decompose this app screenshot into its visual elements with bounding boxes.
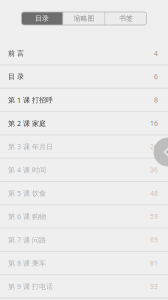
staticText: 前 言	[8, 49, 24, 58]
staticText: 目 录	[8, 72, 24, 81]
staticText: 4	[154, 49, 158, 58]
staticText: 第 4 课 时间	[8, 165, 46, 175]
staticText: 26	[150, 142, 158, 151]
staticText: 第 5 课 饮食	[8, 188, 46, 198]
staticText: 缩略图	[73, 14, 94, 23]
staticText: 8	[154, 95, 158, 104]
staticText: 59	[150, 212, 158, 221]
staticText: 第 7 课 问路	[8, 235, 46, 244]
staticText: 第 8 课 乘车	[8, 258, 46, 268]
staticText: 目录	[35, 14, 49, 23]
button[interactable]: 第 1 课 打招呼	[0, 89, 168, 112]
staticText: 第 2 课 家庭	[8, 118, 46, 128]
staticText: 第 1 课 打招呼	[8, 95, 53, 105]
staticText: 第 9 课 打电话	[8, 281, 53, 291]
staticText: 36	[150, 165, 158, 174]
staticText: 93	[150, 282, 158, 291]
button[interactable]: 第 3 课 年月日	[0, 135, 168, 159]
button[interactable]: Close contents	[153, 137, 168, 166]
staticText: 书签	[119, 14, 133, 23]
staticText: 6	[154, 72, 158, 81]
button[interactable]: 第 7 课 问路	[0, 229, 168, 252]
button[interactable]: 前 言	[0, 42, 168, 65]
staticText: 第 6 课 购物	[8, 212, 46, 221]
button[interactable]: 缩略图	[63, 12, 104, 25]
staticText: 第 3 课 年月日	[8, 142, 53, 151]
button[interactable]: 书签	[105, 12, 146, 25]
staticText: 16	[150, 119, 158, 128]
button[interactable]: 第 9 课 打电话	[0, 275, 168, 298]
button[interactable]: 第 5 课 饮食	[0, 182, 168, 205]
button[interactable]: 第 8 课 乘车	[0, 252, 168, 275]
button[interactable]: 目录	[21, 12, 63, 25]
button[interactable]: 第 2 课 家庭	[0, 112, 168, 135]
staticText: 81	[150, 258, 158, 268]
staticText: 48	[150, 189, 158, 198]
button[interactable]: 目 录	[0, 65, 168, 89]
staticText: 69	[150, 235, 158, 244]
button[interactable]: 第 6 课 购物	[0, 205, 168, 229]
button[interactable]: 第 4 课 时间	[0, 159, 168, 182]
